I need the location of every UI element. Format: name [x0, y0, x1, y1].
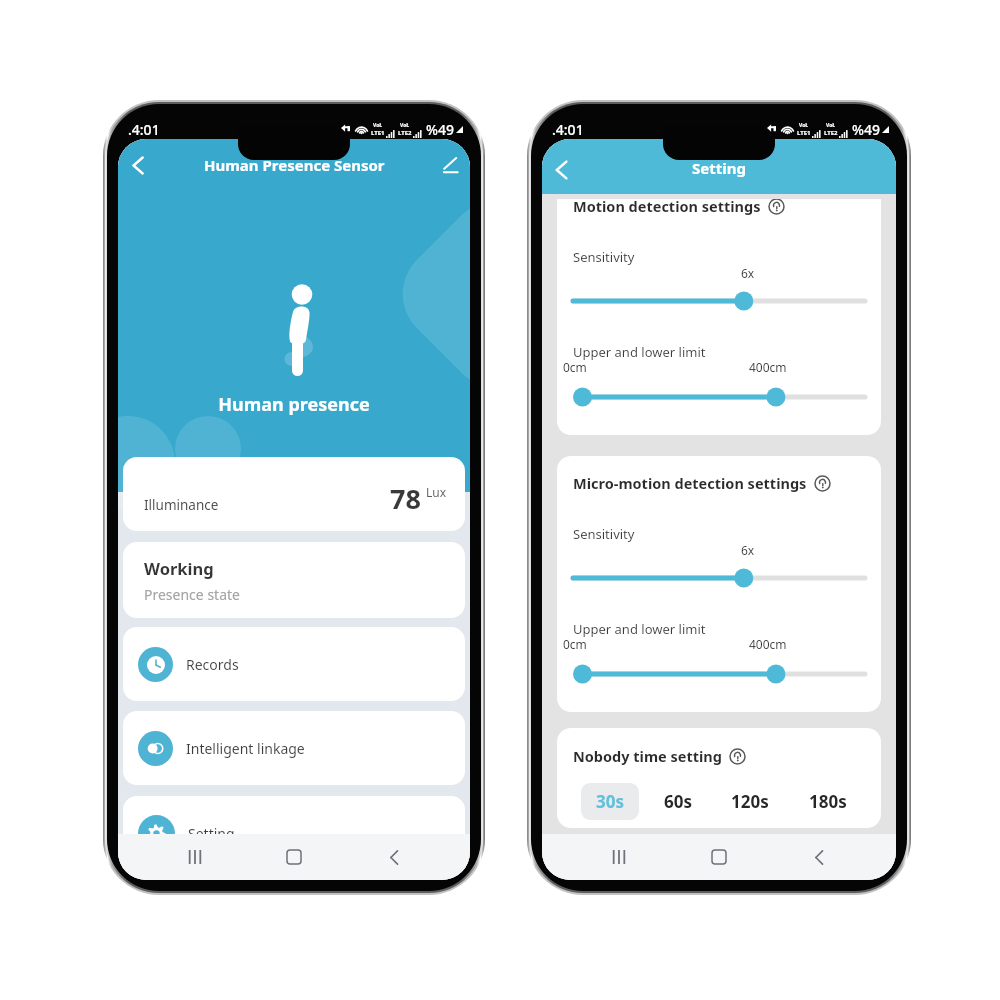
button[interactable] — [573, 291, 865, 311]
staticText: Intelligent linkage — [186, 739, 305, 758]
staticText: Setting — [692, 158, 746, 178]
button[interactable] — [573, 568, 865, 588]
button[interactable]: Home — [271, 834, 317, 880]
staticText: .4:01 — [552, 120, 584, 139]
button[interactable]: Back — [796, 834, 842, 880]
staticText: Upper and lower limit — [573, 620, 706, 638]
staticText: Working — [144, 557, 214, 579]
button[interactable]: 30s — [581, 783, 639, 820]
staticText: Human Presence Sensor — [204, 155, 385, 175]
button[interactable]: Home — [696, 834, 742, 880]
button[interactable]: Back — [118, 145, 158, 185]
staticText: VoŁ — [799, 122, 809, 129]
staticText: Human presence — [118, 392, 470, 417]
staticText: .4:01 — [128, 120, 160, 139]
staticText: 120s — [731, 790, 769, 813]
button[interactable]: 60s — [649, 783, 707, 820]
staticText: 400cm — [749, 359, 787, 375]
staticText: %49 — [852, 120, 880, 139]
staticText: 0cm — [563, 359, 587, 375]
staticText: Sensitivity — [573, 248, 635, 266]
staticText: VoŁ — [373, 122, 383, 129]
staticText: Motion detection settings — [573, 199, 761, 216]
staticText: %49 — [426, 120, 454, 139]
staticText: LTE2 — [398, 129, 412, 137]
staticText: LTE1 — [797, 129, 811, 137]
staticText: Sensitivity — [573, 525, 635, 543]
button[interactable]: 120s — [716, 783, 784, 820]
button[interactable] — [573, 387, 865, 407]
staticText: 6x — [741, 542, 755, 558]
staticText: 180s — [809, 790, 847, 813]
button[interactable]: Intelligent linkage — [123, 711, 465, 785]
staticText: Micro-motion detection settings — [573, 473, 807, 493]
button[interactable]: 180s — [794, 783, 862, 820]
staticText: Lux — [426, 484, 447, 500]
staticText: Upper and lower limit — [573, 343, 706, 361]
staticText: 6x — [741, 265, 755, 281]
button[interactable]: Edit — [432, 147, 468, 183]
staticText: 78 — [390, 480, 421, 517]
button[interactable]: Working — [123, 542, 465, 618]
staticText: Records — [186, 655, 239, 674]
staticText: VoŁ — [400, 122, 410, 129]
staticText: 0cm — [563, 636, 587, 652]
button[interactable]: Illuminance — [123, 457, 465, 531]
button[interactable]: Back — [371, 834, 417, 880]
button[interactable]: Recent apps — [172, 834, 218, 880]
staticText: LTE2 — [824, 129, 838, 137]
staticText: VoŁ — [826, 122, 836, 129]
staticText: Presence state — [144, 585, 240, 604]
staticText: Setting — [188, 824, 235, 843]
staticText: 400cm — [749, 636, 787, 652]
button[interactable]: Back — [542, 150, 582, 190]
staticText: LTE1 — [371, 129, 385, 137]
staticText: 30s — [596, 790, 624, 813]
button[interactable]: Setting — [123, 796, 465, 870]
staticText: 60s — [664, 790, 692, 813]
staticText: Illuminance — [144, 496, 219, 514]
button[interactable]: Recent apps — [596, 834, 642, 880]
button[interactable]: Records — [123, 627, 465, 701]
button[interactable] — [573, 664, 865, 684]
staticText: Nobody time setting — [573, 746, 722, 766]
